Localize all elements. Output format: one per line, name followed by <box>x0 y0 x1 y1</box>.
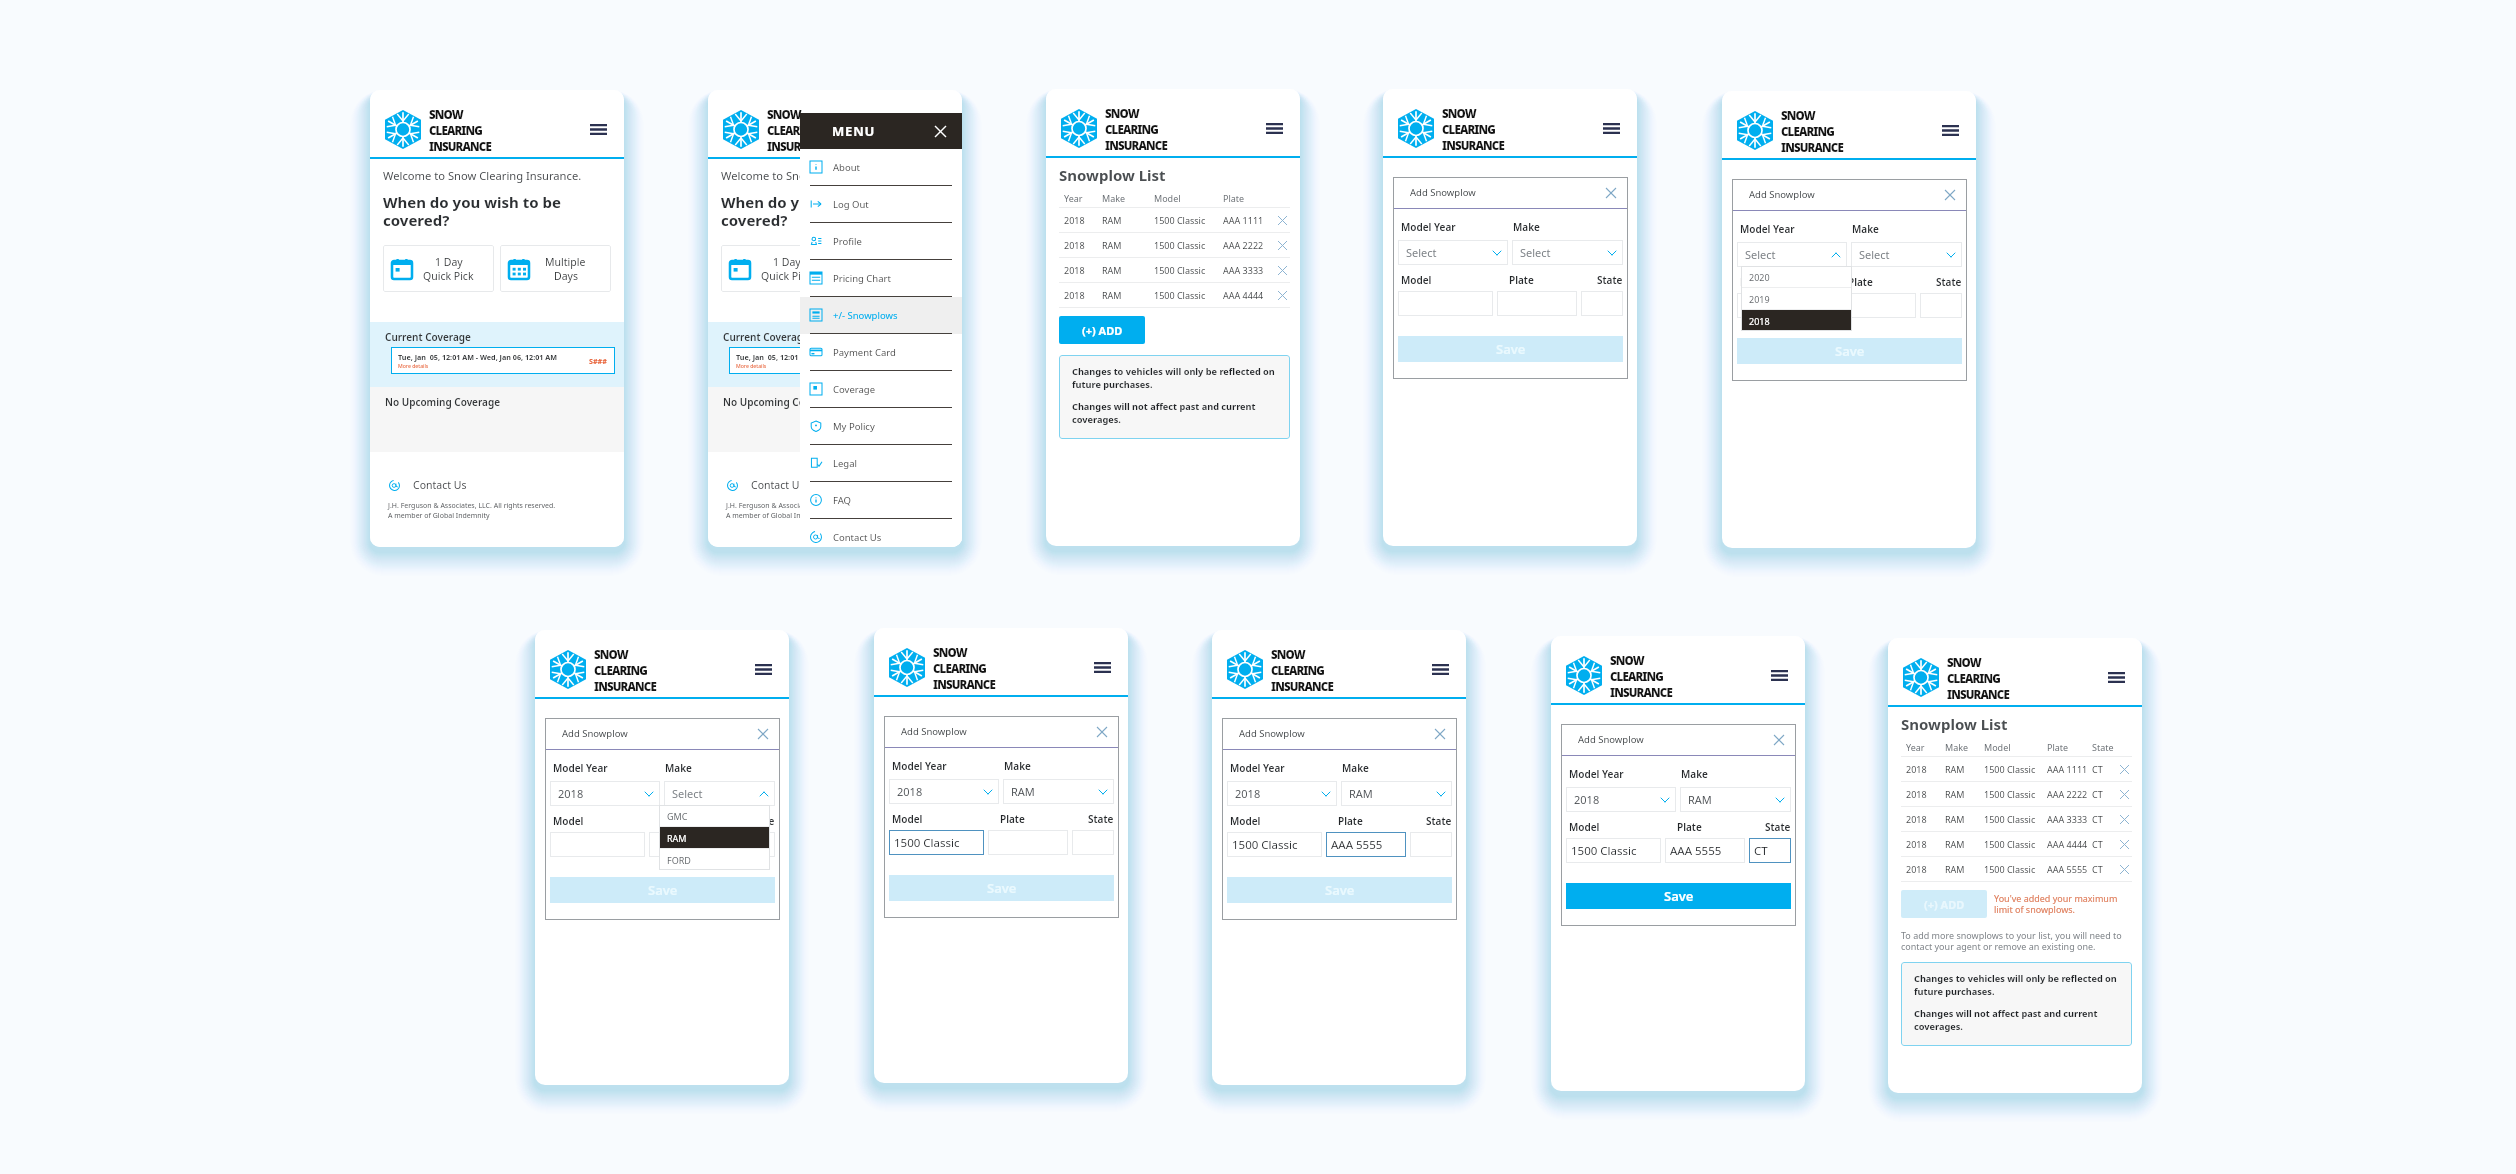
button[interactable]: FORD <box>659 849 770 870</box>
button[interactable] <box>1410 832 1452 857</box>
button[interactable]: AAA 5555 <box>1665 838 1745 863</box>
button[interactable]: Menu <box>1426 656 1455 683</box>
button[interactable]: Menu <box>1936 117 1965 144</box>
button[interactable]: Pricing Chart <box>800 260 962 297</box>
button[interactable]: Contact Us <box>727 476 805 494</box>
button[interactable]: Close dialog <box>1771 732 1787 748</box>
button[interactable]: About <box>800 149 962 186</box>
button[interactable]: Profile <box>800 223 962 260</box>
button[interactable]: 2018 <box>889 779 999 804</box>
button[interactable]: Select <box>1512 240 1623 265</box>
button[interactable]: Remove <box>2117 787 2132 802</box>
button[interactable]: Close dialog <box>1942 187 1958 203</box>
button[interactable]: Select <box>1398 240 1508 265</box>
button[interactable] <box>1836 293 1916 318</box>
button[interactable]: 1500 Classic <box>1566 838 1661 863</box>
button[interactable]: Remove <box>2117 762 2132 777</box>
button[interactable]: RAM <box>659 827 770 848</box>
button[interactable] <box>988 830 1068 855</box>
button[interactable]: Remove <box>1275 238 1290 253</box>
button[interactable]: Remove <box>1275 288 1290 303</box>
button[interactable]: Remove <box>2117 837 2132 852</box>
staticText: 1500 Classic <box>1232 837 1298 853</box>
button[interactable]: Menu <box>1260 115 1289 142</box>
staticText: AAA 1111 <box>1223 214 1273 226</box>
button[interactable] <box>1497 291 1577 316</box>
button[interactable]: Remove <box>1275 213 1290 228</box>
button[interactable]: Menu <box>922 116 951 143</box>
button[interactable] <box>733 832 775 857</box>
button[interactable]: Save <box>889 875 1114 901</box>
button[interactable]: Save <box>1737 338 1962 364</box>
button[interactable]: Remove <box>1275 263 1290 278</box>
button[interactable]: Menu <box>584 116 613 143</box>
staticText: When do you wish to be covered? <box>383 192 611 231</box>
staticText: 2019 <box>1749 293 1770 305</box>
button[interactable]: 1 Day <box>383 245 494 292</box>
button[interactable]: (+) ADD <box>1059 316 1145 344</box>
button[interactable]: My Policy <box>800 408 962 445</box>
button[interactable]: Contact Us <box>389 476 467 494</box>
button[interactable]: 2018 <box>1741 310 1852 331</box>
staticText: Changes will not affect past and current… <box>1914 1007 2122 1033</box>
button[interactable] <box>1737 293 1832 318</box>
button[interactable]: Tue, Jan 05, 12:01 AM - Wed, Jan 06, 12:… <box>391 347 615 374</box>
button[interactable]: +/- Snowplows <box>800 297 962 334</box>
button[interactable]: Save <box>550 877 775 903</box>
button[interactable]: AAA 5555 <box>1326 832 1406 857</box>
button[interactable]: Menu <box>749 656 778 683</box>
button[interactable]: Remove <box>2117 862 2132 877</box>
staticText: RAM <box>1011 784 1035 799</box>
button[interactable]: RAM <box>1003 779 1114 804</box>
button[interactable] <box>649 832 729 857</box>
button[interactable]: 2019 <box>1741 288 1852 309</box>
button[interactable]: Select <box>664 781 775 806</box>
button[interactable]: 2018 <box>550 781 660 806</box>
button[interactable]: Menu <box>2102 664 2131 691</box>
button[interactable]: RAM <box>1680 787 1791 812</box>
button[interactable]: 2018 <box>1227 781 1337 806</box>
button[interactable]: 2020 <box>1741 266 1852 287</box>
button[interactable] <box>1581 291 1623 316</box>
button[interactable] <box>1398 291 1493 316</box>
button[interactable]: Payment Card <box>800 334 962 371</box>
button[interactable]: (+) ADD <box>1901 890 1987 918</box>
button[interactable]: Multiple <box>500 245 611 292</box>
staticText: State <box>1597 273 1623 287</box>
button[interactable]: Menu <box>1597 115 1626 142</box>
button[interactable]: Save <box>1227 877 1452 903</box>
button[interactable]: GMC <box>659 805 770 826</box>
staticText: CLEARING <box>767 123 820 139</box>
button[interactable]: Coverage <box>800 371 962 408</box>
button[interactable] <box>1920 293 1962 318</box>
button[interactable]: Close dialog <box>1603 185 1619 201</box>
button[interactable]: Remove <box>2117 812 2132 827</box>
button[interactable]: FAQ <box>800 482 962 519</box>
button[interactable]: Close dialog <box>755 726 771 742</box>
button[interactable]: RAM <box>1341 781 1452 806</box>
button[interactable]: Close dialog <box>1094 724 1110 740</box>
button[interactable]: 2018 <box>1566 787 1676 812</box>
button[interactable]: Save <box>1566 883 1791 909</box>
button[interactable]: 1 Day <box>721 245 832 292</box>
button[interactable]: Menu <box>1088 654 1117 681</box>
staticText: Plate <box>1000 812 1086 826</box>
button[interactable]: Menu <box>1765 662 1794 689</box>
button[interactable]: Close dialog <box>1432 726 1448 742</box>
button[interactable] <box>1072 830 1114 855</box>
button[interactable]: Tue, Jan 05, 12:01 AM - Wed, Jan 06, 12:… <box>729 347 953 374</box>
button[interactable]: 1500 Classic <box>1227 832 1322 857</box>
button[interactable]: 1500 Classic <box>889 830 984 855</box>
staticText: Make <box>1852 222 1962 236</box>
button[interactable]: Multiple <box>838 245 949 292</box>
button[interactable]: CT <box>1749 838 1791 863</box>
button[interactable]: Legal <box>800 445 962 482</box>
button[interactable]: Save <box>1398 336 1623 362</box>
button[interactable]: Select <box>1737 242 1847 267</box>
button[interactable]: Select <box>1851 242 1962 267</box>
button[interactable]: Close menu <box>931 122 949 140</box>
button[interactable]: Log Out <box>800 186 962 223</box>
button[interactable] <box>550 832 645 857</box>
staticText: Save <box>987 879 1017 897</box>
button[interactable]: Contact Us <box>800 519 962 547</box>
